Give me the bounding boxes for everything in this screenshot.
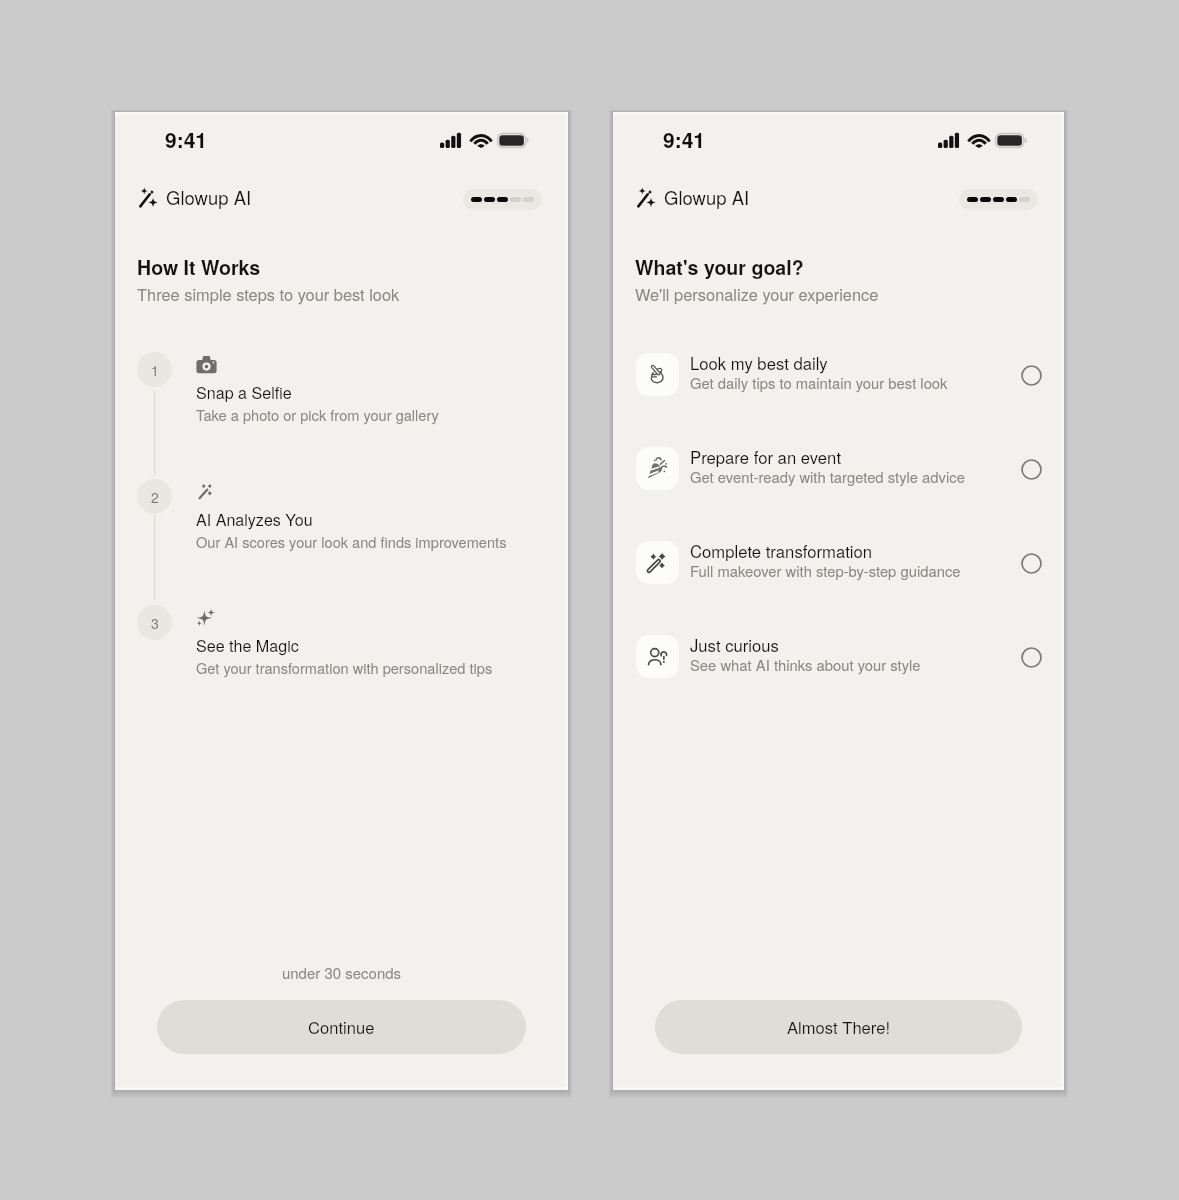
button[interactable]: Just curious — [613, 635, 1064, 679]
staticText: Glowup AI — [664, 184, 750, 210]
staticText: Almost There! — [787, 1015, 891, 1039]
staticText: AI Analyzes You — [196, 508, 313, 531]
button[interactable]: Almost There! — [655, 1000, 1022, 1054]
staticText: We'll personalize your experience — [635, 282, 879, 305]
staticText: See the Magic — [196, 634, 299, 657]
staticText: Get your transformation with personalize… — [196, 657, 493, 678]
button[interactable]: Look my best daily — [613, 353, 1064, 397]
staticText: Look my best daily — [690, 351, 828, 375]
button[interactable]: Continue — [157, 1000, 526, 1054]
button[interactable]: Complete transformation — [613, 541, 1064, 585]
staticText: Get event-ready with targeted style advi… — [690, 466, 965, 487]
staticText: See what AI thinks about your style — [690, 654, 921, 675]
staticText: Complete transformation — [690, 539, 873, 563]
staticText: Continue — [308, 1015, 375, 1039]
staticText: 9:41 — [165, 124, 208, 154]
staticText: 1 — [151, 360, 159, 380]
staticText: What's your goal? — [635, 253, 804, 281]
staticText: Three simple steps to your best look — [137, 282, 400, 305]
staticText: Just curious — [690, 633, 779, 657]
staticText: 2 — [151, 487, 159, 507]
staticText: How It Works — [137, 253, 261, 281]
staticText: Take a photo or pick from your gallery — [196, 404, 439, 425]
staticText: Get daily tips to maintain your best loo… — [690, 372, 948, 393]
staticText: 9:41 — [663, 124, 706, 154]
staticText: Prepare for an event — [690, 445, 842, 469]
staticText: Full makeover with step-by-step guidance — [690, 560, 961, 581]
staticText: Glowup AI — [166, 184, 252, 210]
staticText: Snap a Selfie — [196, 381, 292, 404]
staticText: under 30 seconds — [115, 962, 568, 983]
staticText: Our AI scores your look and finds improv… — [196, 531, 507, 552]
button[interactable]: Prepare for an event — [613, 447, 1064, 491]
staticText: 3 — [151, 613, 159, 633]
